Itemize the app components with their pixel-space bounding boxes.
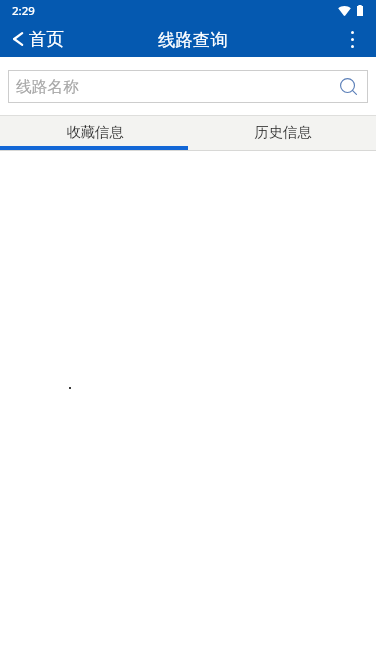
staticText: 2:29 [12, 3, 35, 19]
staticText: 历史信息 [254, 123, 312, 141]
staticText: 首页 [29, 28, 64, 50]
button[interactable]: More options [335, 22, 376, 57]
staticText: 线路查询 [158, 29, 228, 51]
button[interactable]: 线路名称 [8, 70, 368, 103]
button[interactable]: 收藏信息 [0, 116, 188, 150]
staticText: 线路名称 [16, 77, 80, 97]
button[interactable]: 历史信息 [188, 116, 376, 150]
button[interactable]: 首页 [0, 22, 74, 57]
button[interactable]: Search [340, 78, 357, 95]
staticText: 收藏信息 [66, 123, 124, 141]
